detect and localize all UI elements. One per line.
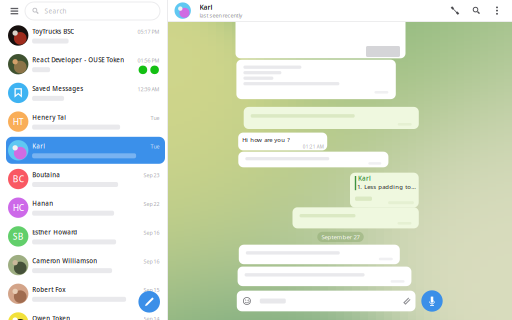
staticText: Karl	[32, 142, 45, 150]
button[interactable]: More options	[492, 3, 502, 19]
button[interactable]: ToyTrucks BSC	[0, 21, 168, 50]
staticText: Cameron Williamson	[32, 257, 97, 265]
button[interactable]: Owen Token	[0, 308, 168, 320]
staticText: BC	[13, 173, 24, 185]
staticText: Tue	[150, 143, 159, 150]
button[interactable]: HT	[0, 107, 168, 136]
button[interactable]: Call	[448, 3, 462, 19]
staticText: SB	[13, 231, 24, 242]
staticText: HC	[13, 202, 24, 213]
staticText: 01:21 AM	[303, 144, 324, 150]
button[interactable]: Saved Messages	[0, 79, 168, 107]
staticText: Sep 15	[143, 286, 159, 294]
staticText: Search	[44, 7, 66, 15]
button[interactable]: Message	[237, 291, 415, 311]
staticText: Sep 16	[143, 229, 159, 236]
staticText: HT	[13, 116, 24, 127]
staticText: Tue	[150, 114, 159, 121]
button[interactable]: SB	[0, 222, 168, 251]
staticText: Sep 23	[143, 172, 159, 179]
button[interactable]: HC	[0, 193, 168, 222]
staticText: Sep 14	[143, 315, 159, 320]
button[interactable]: Cameron Williamson	[0, 251, 168, 279]
staticText: Boutaina	[32, 171, 60, 179]
staticText: Esther Howard	[32, 228, 77, 236]
staticText: Hi how are you ?	[242, 136, 290, 144]
staticText: Owen Token	[32, 314, 70, 320]
staticText: Saved Messages	[32, 84, 83, 93]
staticText: 12:39 AM	[137, 85, 159, 93]
button[interactable]: Karl	[0, 136, 168, 165]
button[interactable]: Menu	[6, 1, 22, 21]
button[interactable]: Search	[25, 2, 160, 20]
staticText: September 27	[321, 233, 359, 241]
staticText: 01:56 PM	[137, 57, 159, 64]
button[interactable]: New message	[137, 290, 161, 314]
staticText: ToyTrucks BSC	[32, 27, 74, 35]
button[interactable]: Record voice message	[420, 289, 444, 313]
staticText: React Developer - OUSE Token	[32, 56, 124, 64]
staticText: 1. Less padding top ...	[357, 183, 419, 191]
button[interactable]: Robert Fox	[0, 279, 168, 308]
staticText: Sep 16	[143, 258, 159, 265]
button[interactable]: React Developer - OUSE Token	[0, 50, 168, 79]
staticText: Karl	[199, 3, 212, 12]
staticText: Karl	[358, 174, 371, 182]
staticText: last seen recently	[199, 12, 242, 19]
button[interactable]: Search in chat	[469, 3, 483, 19]
staticText: Sep 22	[143, 200, 159, 208]
staticText: 05:17 PM	[137, 28, 159, 35]
button[interactable]: BC	[0, 165, 168, 193]
staticText: Hanan	[32, 199, 53, 208]
staticText: Henery Tai	[32, 113, 66, 122]
staticText: Robert Fox	[32, 285, 65, 294]
